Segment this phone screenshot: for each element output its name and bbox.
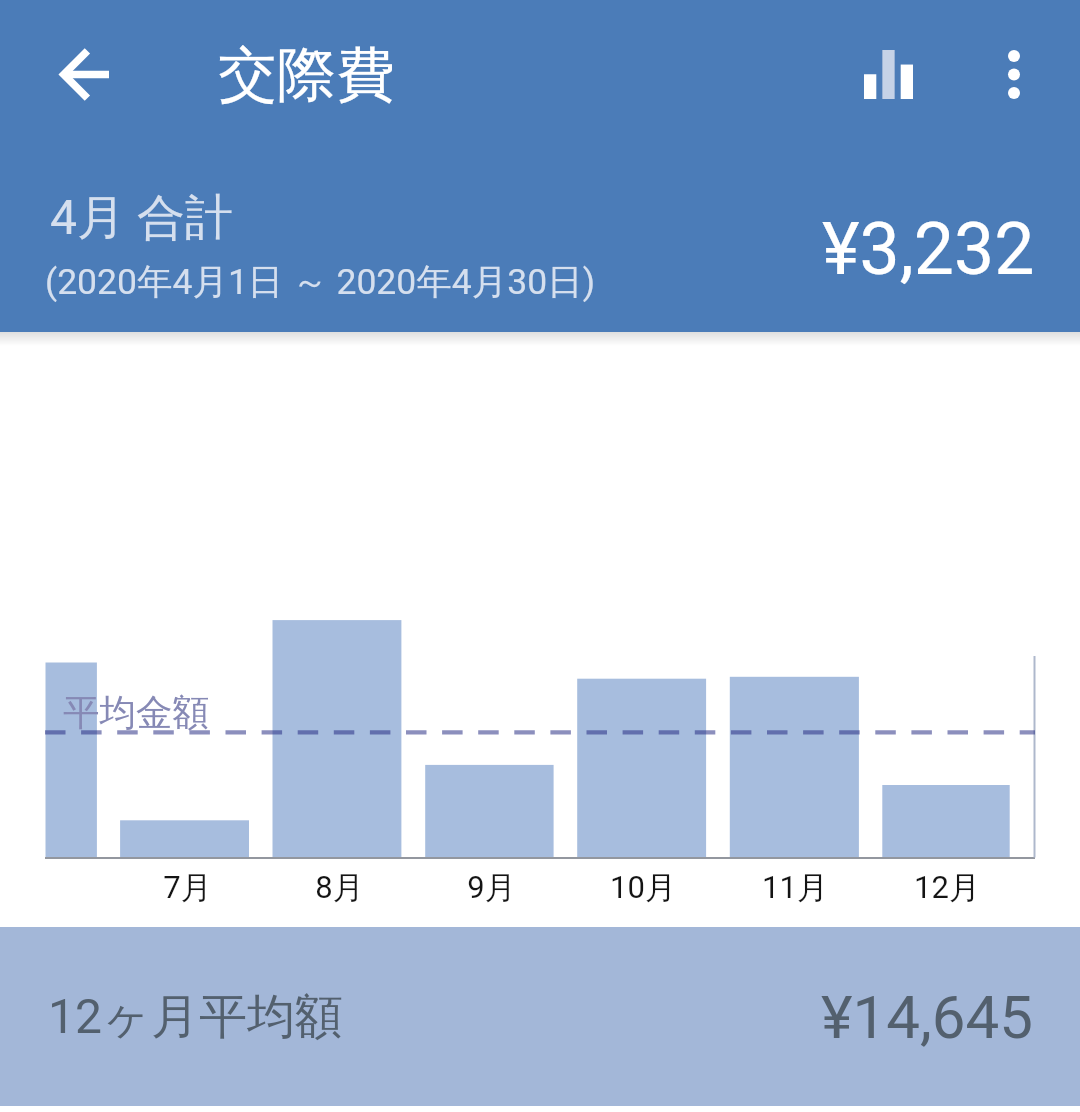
staticText: 9月 (467, 868, 516, 907)
staticText: 10月 (610, 868, 676, 907)
staticText: ¥3,232 (822, 208, 1035, 292)
staticText: 12ヶ月平均額 (48, 987, 344, 1047)
button[interactable]: 12ヶ月平均額 (0, 927, 1080, 1106)
staticText: 交際費 (218, 38, 395, 112)
staticText: 4月 合計 (50, 188, 233, 248)
staticText: 7月 (163, 868, 212, 907)
staticText: 平均金額 (63, 690, 209, 736)
button[interactable]: 交際費 (188, 20, 425, 130)
staticText: 12月 (914, 868, 980, 907)
button[interactable]: More options (966, 26, 1062, 122)
staticText: 11月 (762, 868, 828, 907)
staticText: (2020年4月1日 ～ 2020年4月30日) (45, 260, 595, 305)
staticText: ¥14,645 (821, 982, 1033, 1052)
button[interactable]: Chart (840, 26, 936, 122)
button[interactable]: Back (36, 26, 132, 122)
staticText: 8月 (315, 868, 364, 907)
